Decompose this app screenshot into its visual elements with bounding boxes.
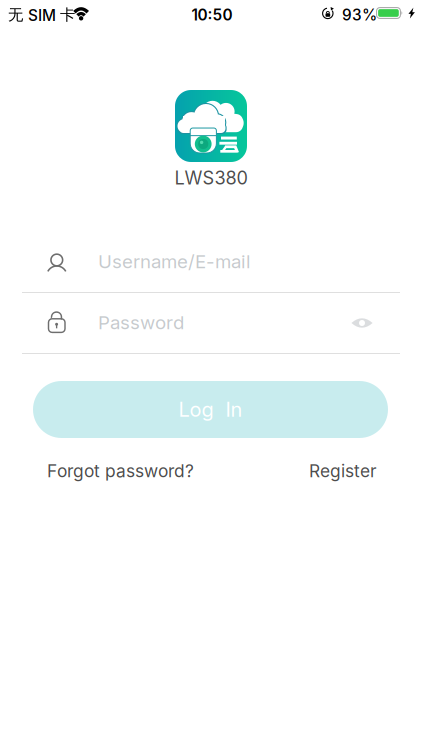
staticText: Password	[98, 311, 184, 334]
staticText: LWS380	[174, 167, 247, 189]
staticText: Forgot password?	[47, 460, 194, 481]
button[interactable]: Username/E-mail	[22, 231, 400, 292]
button[interactable]: Password	[22, 292, 400, 353]
staticText: 10:50	[191, 6, 232, 24]
button[interactable]: Show password	[340, 301, 384, 345]
staticText: Username/E-mail	[98, 250, 251, 273]
button[interactable]: Forgot password?	[47, 456, 207, 486]
staticText: 无 SIM 卡	[8, 5, 75, 25]
button[interactable]: Log In	[33, 381, 388, 438]
button[interactable]: Register	[287, 456, 377, 486]
staticText: 93%	[342, 6, 377, 24]
staticText: Register	[309, 460, 377, 481]
staticText: Log In	[178, 397, 242, 422]
